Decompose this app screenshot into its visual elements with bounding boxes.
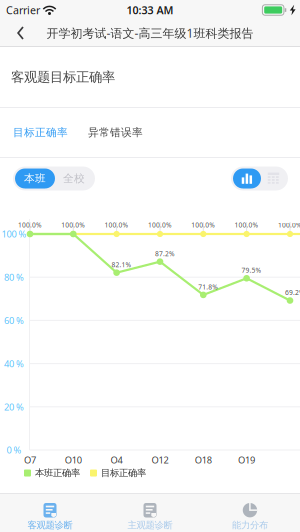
staticText: 100.0%: [18, 221, 42, 229]
staticText: 本班: [24, 172, 46, 185]
staticText: 客观题目标正确率: [11, 69, 115, 85]
staticText: 0 %: [6, 444, 21, 456]
button[interactable]: 能力分布: [200, 494, 300, 532]
staticText: O19: [238, 454, 255, 466]
button[interactable]: 异常错误率: [83, 117, 148, 148]
staticText: 82.1%: [112, 260, 132, 269]
staticText: 本班正确率: [35, 467, 80, 479]
staticText: 80 %: [4, 271, 24, 283]
staticText: 全校: [63, 172, 85, 185]
button[interactable]: 本班: [15, 168, 55, 188]
staticText: O4: [111, 454, 123, 466]
staticText: 79.5%: [242, 266, 262, 275]
staticText: 60 %: [4, 314, 24, 327]
staticText: 100.0%: [278, 221, 300, 229]
button[interactable]: 主观题诊断: [100, 494, 200, 532]
staticText: 异常错误率: [88, 126, 143, 139]
staticText: 能力分布: [232, 519, 268, 531]
staticText: 87.2%: [155, 249, 175, 258]
staticText: O18: [195, 454, 212, 466]
staticText: 开学初考试-语文-高三年级1班科类报告: [46, 25, 253, 41]
staticText: 10:33 AM: [126, 3, 173, 17]
staticText: 主观题诊断: [127, 519, 172, 531]
staticText: 目标正确率: [101, 467, 146, 479]
staticText: 客观题诊断: [27, 519, 72, 531]
button[interactable]: 全校: [55, 168, 93, 188]
staticText: O7: [24, 454, 36, 466]
button[interactable]: Back: [0, 20, 36, 46]
button[interactable]: 目标正确率: [8, 117, 73, 148]
button[interactable]: Table view: [261, 168, 286, 188]
button[interactable]: Chart view: [233, 168, 261, 188]
staticText: 69.2%: [285, 288, 300, 297]
staticText: 20 %: [4, 401, 24, 413]
staticText: 100.0%: [105, 221, 129, 229]
staticText: O10: [65, 454, 82, 466]
staticText: 100.0%: [148, 221, 172, 229]
staticText: 100.0%: [61, 221, 85, 229]
staticText: 目标正确率: [13, 126, 68, 139]
staticText: Carrier: [6, 3, 40, 17]
staticText: 100.0%: [191, 221, 215, 229]
staticText: O12: [151, 454, 168, 466]
staticText: 40 %: [4, 357, 24, 370]
staticText: 100 %: [1, 228, 26, 240]
staticText: 100.0%: [235, 221, 259, 229]
button[interactable]: 客观题诊断: [0, 494, 100, 532]
staticText: 71.8%: [198, 282, 218, 291]
